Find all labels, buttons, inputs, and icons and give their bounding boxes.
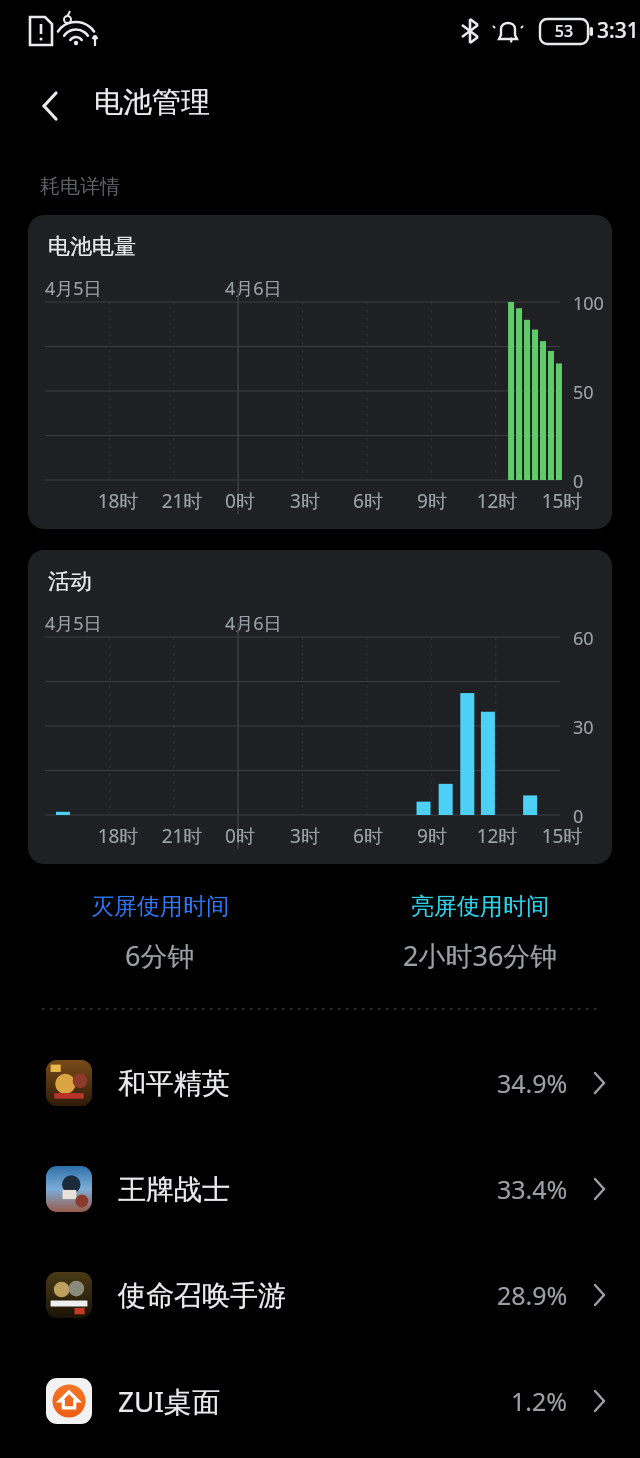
staticText: 王牌战士 xyxy=(118,1172,230,1207)
staticText: ZUI桌面 xyxy=(118,1382,220,1420)
button[interactable]: 灭屏使用时间 xyxy=(0,892,320,974)
staticText: 4月5日 xyxy=(45,611,102,636)
staticText: 和平精英 xyxy=(118,1066,230,1101)
staticText: 耗电详情 xyxy=(40,174,120,199)
staticText: 18时 xyxy=(92,823,144,849)
staticText: 2小时36分钟 xyxy=(403,937,558,974)
staticText: 18时 xyxy=(92,488,144,514)
staticText: 28.9% xyxy=(497,1278,568,1312)
staticText: 0 xyxy=(573,804,584,829)
staticText: 33.4% xyxy=(497,1172,568,1206)
staticText: 6时 xyxy=(342,823,394,849)
staticText: 4月6日 xyxy=(225,276,282,301)
staticText: 电池电量 xyxy=(48,233,136,261)
staticText: 9时 xyxy=(406,823,458,849)
staticText: 30 xyxy=(573,715,594,740)
staticText: 4月5日 xyxy=(45,276,102,301)
staticText: 3时 xyxy=(279,488,331,514)
staticText: 50 xyxy=(573,380,594,405)
staticText: 21时 xyxy=(156,488,208,514)
staticText: 34.9% xyxy=(497,1066,568,1100)
staticText: 0 xyxy=(573,469,584,494)
button[interactable]: 活动 xyxy=(28,550,612,864)
staticText: 3:31 xyxy=(597,16,639,45)
staticText: 12时 xyxy=(471,823,523,849)
staticText: 9时 xyxy=(406,488,458,514)
button[interactable]: ZUI桌面 xyxy=(0,1348,640,1454)
button[interactable]: 和平精英 xyxy=(0,1030,640,1136)
staticText: 100 xyxy=(573,291,604,316)
staticText: 0时 xyxy=(214,823,266,849)
staticText: 活动 xyxy=(48,568,92,596)
staticText: 15时 xyxy=(536,488,588,514)
staticText: 6时 xyxy=(342,488,394,514)
staticText: 21时 xyxy=(156,823,208,849)
staticText: 亮屏使用时间 xyxy=(411,892,549,921)
staticText: 灭屏使用时间 xyxy=(91,892,229,921)
button[interactable]: Back xyxy=(22,78,78,134)
staticText: 0时 xyxy=(214,488,266,514)
staticText: 1.2% xyxy=(511,1384,568,1418)
staticText: 3时 xyxy=(279,823,331,849)
staticText: 60 xyxy=(573,626,594,651)
button[interactable]: 亮屏使用时间 xyxy=(320,892,640,974)
staticText: 12时 xyxy=(471,488,523,514)
staticText: 15时 xyxy=(536,823,588,849)
staticText: 使命召唤手游 xyxy=(118,1278,286,1313)
staticText: 4月6日 xyxy=(225,611,282,636)
button[interactable]: 王牌战士 xyxy=(0,1136,640,1242)
staticText: 6分钟 xyxy=(125,937,195,974)
button[interactable]: 使命召唤手游 xyxy=(0,1242,640,1348)
button[interactable]: 电池电量 xyxy=(28,215,612,529)
staticText: 电池管理 xyxy=(94,84,210,121)
staticText: 53 xyxy=(546,20,582,42)
